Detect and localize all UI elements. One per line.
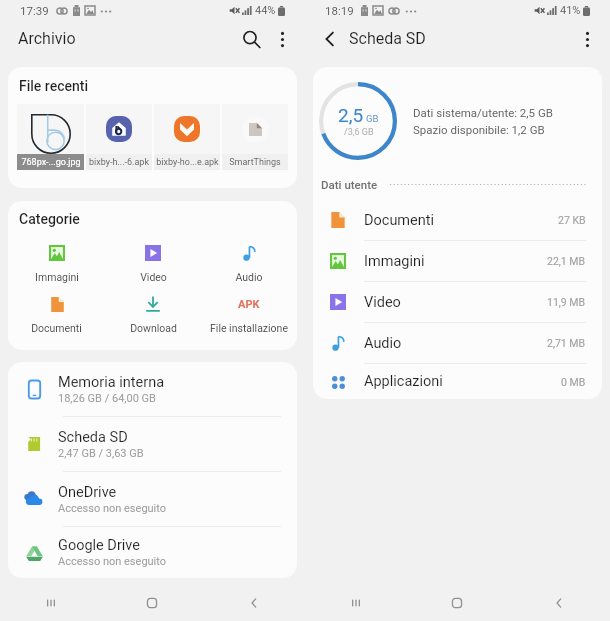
staticText: Immagini xyxy=(35,271,79,283)
staticText: 44% xyxy=(255,4,276,17)
button[interactable]: SmartThings xyxy=(222,104,288,170)
staticText: 2,5 xyxy=(338,104,364,126)
staticText: bixby-ho...e.apk xyxy=(156,157,219,168)
staticText: Accesso non eseguito xyxy=(58,502,167,515)
button[interactable]: More options xyxy=(573,25,601,53)
staticText: OneDrive xyxy=(58,484,117,501)
staticText: Download xyxy=(130,322,177,334)
staticText: 18:19 xyxy=(325,4,354,17)
button[interactable]: Immagini xyxy=(8,243,105,283)
staticText: Documenti xyxy=(364,212,558,229)
staticText: Dati sistema/utente: 2,5 GB xyxy=(413,106,553,119)
button[interactable]: More options xyxy=(268,25,296,53)
staticText: Video xyxy=(140,271,167,283)
button[interactable]: Back xyxy=(315,24,345,54)
staticText: 17:39 xyxy=(20,4,49,17)
staticText: File installazione xyxy=(210,322,288,334)
button[interactable]: Home xyxy=(101,585,203,621)
staticText: File recenti xyxy=(19,78,89,94)
button[interactable]: Recent apps xyxy=(0,585,101,621)
button[interactable]: Documenti xyxy=(313,200,602,241)
button[interactable]: Memoria interna xyxy=(8,362,297,417)
staticText: Scheda SD xyxy=(58,429,128,446)
button[interactable]: Audio xyxy=(201,243,297,283)
staticText: Archivio xyxy=(18,29,235,48)
button[interactable]: bixby-h...-6.apk xyxy=(86,104,152,170)
button[interactable]: Audio xyxy=(313,323,602,364)
button[interactable]: APK xyxy=(201,294,297,334)
button[interactable]: OneDrive xyxy=(8,472,297,527)
staticText: 41% xyxy=(560,4,581,17)
button[interactable]: Scheda SD xyxy=(8,417,297,472)
staticText: Memoria interna xyxy=(58,374,165,391)
button[interactable]: bixby-ho...e.apk xyxy=(154,104,220,170)
staticText: 0 MB xyxy=(561,376,586,388)
staticText: Applicazioni xyxy=(364,373,561,390)
button[interactable]: Applicazioni xyxy=(313,364,602,399)
button[interactable]: Google Drive xyxy=(8,527,297,578)
staticText: 11,9 MB xyxy=(547,296,586,308)
button[interactable]: Video xyxy=(313,282,602,323)
button[interactable]: 768px-...go.jpg xyxy=(17,104,84,170)
staticText: Categorie xyxy=(19,211,80,227)
staticText: 27 KB xyxy=(558,214,586,226)
button[interactable]: Recent apps xyxy=(305,585,406,621)
staticText: Audio xyxy=(235,271,263,283)
staticText: APK xyxy=(238,298,260,311)
staticText: bixby-h...-6.apk xyxy=(89,157,149,168)
staticText: Immagini xyxy=(364,253,547,270)
staticText: 18,26 GB / 64,00 GB xyxy=(58,392,156,405)
button[interactable]: Immagini xyxy=(313,241,602,282)
staticText: 22,1 MB xyxy=(547,255,586,267)
button[interactable]: Search xyxy=(235,23,267,55)
staticText: Audio xyxy=(364,335,547,352)
button[interactable]: Download xyxy=(105,294,201,334)
staticText: Documenti xyxy=(31,322,82,334)
staticText: Spazio disponibile: 1,2 GB xyxy=(413,123,545,136)
staticText: Scheda SD xyxy=(349,29,573,48)
button[interactable]: Back xyxy=(203,585,305,621)
button[interactable]: Documenti xyxy=(8,294,105,334)
staticText: Google Drive xyxy=(58,537,140,554)
staticText: 768px-...go.jpg xyxy=(21,157,81,168)
staticText: 2,71 MB xyxy=(547,337,586,349)
staticText: /3,6 GB xyxy=(344,127,374,138)
button[interactable]: Home xyxy=(406,585,508,621)
button[interactable]: Video xyxy=(105,243,201,283)
staticText: SmartThings xyxy=(229,157,281,168)
staticText: Video xyxy=(364,294,547,311)
staticText: GB xyxy=(366,113,379,124)
staticText: 2,47 GB / 3,63 GB xyxy=(58,447,144,460)
button[interactable]: Back xyxy=(508,585,610,621)
staticText: Accesso non eseguito xyxy=(58,555,167,568)
staticText: Dati utente xyxy=(321,178,378,191)
